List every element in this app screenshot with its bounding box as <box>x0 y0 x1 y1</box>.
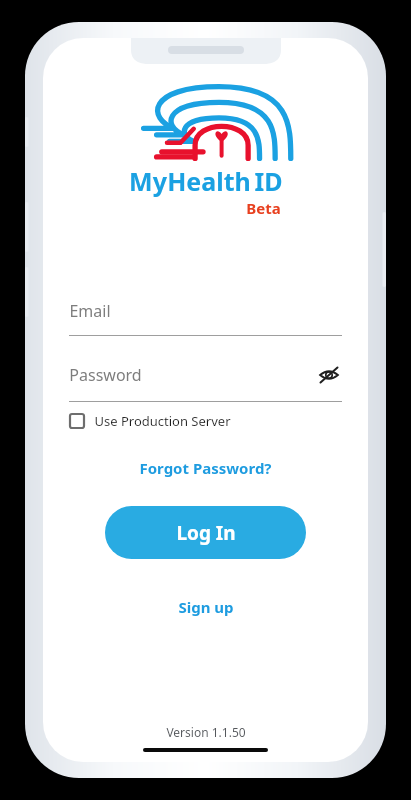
staticText: Sign up <box>178 597 234 617</box>
staticText: Log In <box>176 520 236 546</box>
button[interactable]: Password <box>69 362 342 402</box>
staticText: Health <box>167 164 251 198</box>
staticText: Version 1.1.50 <box>166 724 246 740</box>
button[interactable]: Sign up <box>172 591 240 623</box>
button[interactable]: Use Production Server <box>69 412 342 430</box>
staticText: Password <box>69 364 142 386</box>
button[interactable]: Show password <box>316 362 342 388</box>
button[interactable]: Forgot Password? <box>133 452 278 484</box>
button[interactable]: Email <box>69 300 342 336</box>
staticText: ID <box>254 164 283 198</box>
staticText: Use Production Server <box>94 412 231 430</box>
staticText: My <box>129 164 167 198</box>
staticText: Beta <box>246 198 281 218</box>
staticText: Email <box>69 300 111 322</box>
staticText: Forgot Password? <box>139 458 272 478</box>
button[interactable]: Log In <box>105 506 306 559</box>
